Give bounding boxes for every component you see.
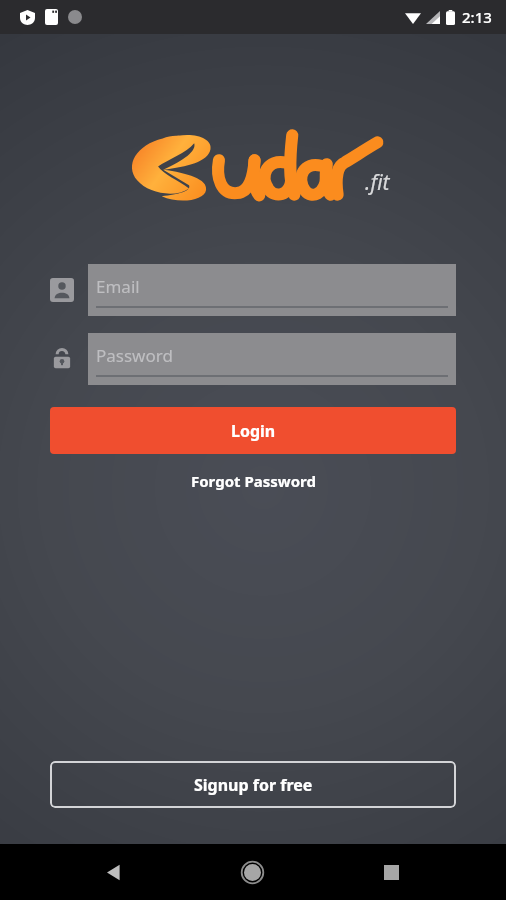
button[interactable]: Home (228, 848, 276, 896)
staticText: Password (96, 344, 173, 367)
button[interactable]: Email (88, 264, 456, 316)
button[interactable]: Recent apps (367, 848, 415, 896)
button[interactable]: Forgot Password (179, 466, 328, 496)
button[interactable]: Signup for free (50, 761, 456, 808)
staticText: Forgot Password (191, 471, 316, 491)
staticText: 2:13 (462, 7, 492, 27)
button[interactable]: Back (90, 848, 138, 896)
other: Password (51, 348, 73, 370)
staticText: Email (96, 275, 140, 298)
other: Email (50, 278, 74, 302)
staticText: Signup for free (194, 774, 313, 796)
staticText: Login (231, 420, 276, 442)
button[interactable]: Password (88, 333, 456, 385)
button[interactable]: Login (50, 407, 456, 454)
staticText: .fit (365, 168, 390, 197)
